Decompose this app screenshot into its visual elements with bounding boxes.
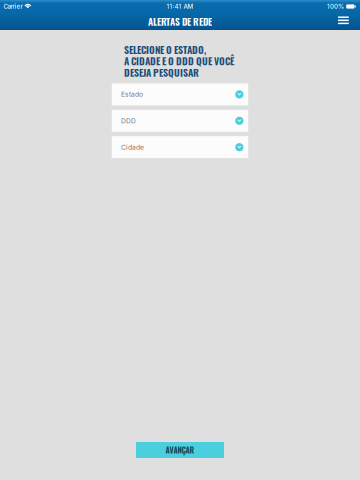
button[interactable]: Cidade bbox=[112, 136, 248, 158]
button[interactable]: DDD bbox=[112, 110, 248, 132]
staticText: DESEJA PESQUISAR bbox=[124, 65, 199, 79]
staticText: AVANÇAR bbox=[165, 444, 194, 456]
staticText: SELECIONE O ESTADO, bbox=[124, 42, 206, 57]
staticText: Cidade bbox=[121, 143, 144, 151]
staticText: DDD bbox=[121, 117, 136, 125]
button[interactable]: Menu bbox=[331, 13, 355, 30]
staticText: 11:41 AM bbox=[166, 3, 193, 10]
staticText: ALERTAS DE REDE bbox=[148, 15, 212, 28]
staticText: 100% bbox=[327, 3, 344, 10]
staticText: Carrier bbox=[4, 3, 23, 10]
staticText: A CIDADE E O DDD QUE VOCÊ bbox=[124, 54, 234, 68]
staticText: Estado bbox=[121, 90, 143, 98]
button[interactable]: AVANÇAR bbox=[136, 442, 224, 458]
button[interactable]: Estado bbox=[112, 83, 248, 105]
